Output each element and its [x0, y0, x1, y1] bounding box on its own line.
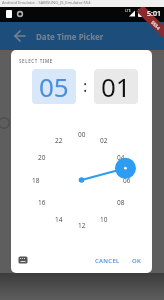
- button[interactable]: 05: [32, 69, 76, 104]
- staticText: Android Emulator - SAMSUNG_JS_Emulator:5…: [2, 0, 91, 5]
- staticText: 08: [117, 198, 125, 207]
- staticText: 22: [55, 136, 63, 145]
- button[interactable]: 01: [94, 69, 138, 104]
- button[interactable]: [13, 29, 27, 43]
- button[interactable]: OK: [128, 255, 146, 266]
- staticText: 5554: [150, 19, 162, 31]
- staticText: 18: [32, 176, 40, 185]
- staticText: 12: [78, 221, 86, 230]
- staticText: :: [83, 75, 88, 97]
- staticText: 20: [38, 153, 46, 162]
- staticText: 00: [78, 130, 86, 139]
- staticText: CANCEL: [95, 257, 120, 265]
- staticText: 5:01: [147, 9, 161, 19]
- button[interactable]: CANCEL: [93, 255, 121, 266]
- button[interactable]: [18, 256, 28, 265]
- staticText: 14: [55, 215, 63, 224]
- staticText: 04: [117, 153, 125, 162]
- staticText: LTE: [125, 8, 131, 13]
- staticText: 05: [39, 69, 69, 104]
- staticText: 01: [101, 69, 131, 104]
- staticText: 10: [100, 215, 108, 224]
- staticText: OK: [132, 257, 142, 265]
- staticText: SELECT TIME: [19, 58, 53, 64]
- staticText: 02: [100, 136, 108, 145]
- staticText: 06: [123, 176, 131, 185]
- staticText: 16: [38, 198, 46, 207]
- staticText: Date Time Picker: [36, 31, 104, 42]
